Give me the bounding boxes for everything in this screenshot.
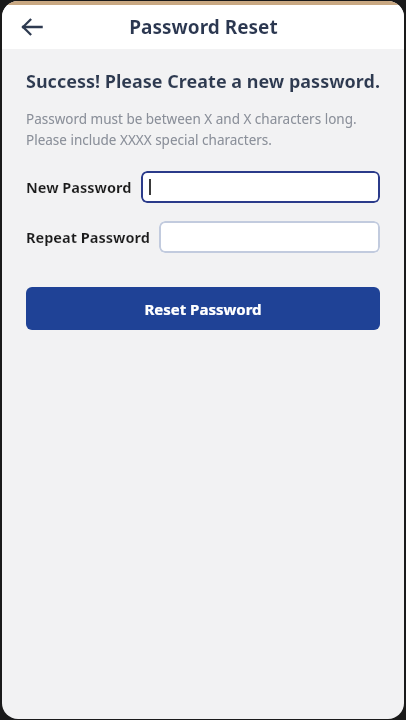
button[interactable]: Reset Password xyxy=(26,287,380,330)
button[interactable] xyxy=(141,171,380,203)
staticText: Password must be between X and X charact… xyxy=(26,110,380,149)
button[interactable] xyxy=(159,221,380,253)
staticText: Repeat Password xyxy=(26,227,150,247)
staticText: Password Reset xyxy=(129,14,278,40)
staticText: Reset Password xyxy=(144,299,262,319)
staticText: New Password xyxy=(26,177,132,197)
button[interactable]: Back xyxy=(10,5,54,49)
staticText: Success! Please Create a new password. xyxy=(26,69,380,94)
